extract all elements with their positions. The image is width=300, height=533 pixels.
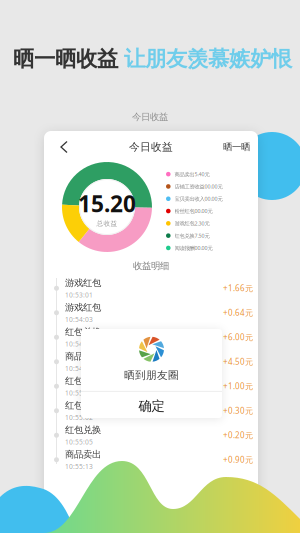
staticText: 商品卖出5.40元 bbox=[175, 171, 210, 178]
staticText: 红包兑换 bbox=[65, 326, 101, 338]
staticText: +6.00元 bbox=[223, 332, 253, 342]
staticText: 红包兑换 bbox=[65, 424, 101, 436]
staticText: 晒一晒 bbox=[223, 141, 250, 153]
staticText: 商品卖出 bbox=[65, 449, 101, 460]
staticText: 粉丝红包00.00元 bbox=[175, 207, 213, 215]
staticText: 红包兑换7.50元 bbox=[175, 232, 210, 239]
staticText: 店铺工资收益00.00元 bbox=[175, 183, 223, 190]
staticText: 红包兑换 bbox=[65, 400, 101, 411]
staticText: 今日收益 bbox=[129, 140, 173, 153]
staticText: 10:54:40 bbox=[65, 364, 93, 373]
staticText: 晒一晒收益 bbox=[13, 46, 118, 72]
staticText: +1.00元 bbox=[223, 381, 253, 391]
staticText: +1.66元 bbox=[223, 283, 253, 293]
staticText: 总收益 bbox=[96, 219, 117, 228]
staticText: 阅读报酬00.00元 bbox=[175, 244, 213, 251]
staticText: 10:54:03 bbox=[65, 315, 93, 324]
staticText: 游戏红包2.30元 bbox=[175, 220, 210, 227]
staticText: 10:55:01 bbox=[65, 389, 93, 397]
staticText: +4.50元 bbox=[223, 356, 253, 367]
staticText: 10:55:13 bbox=[65, 462, 93, 471]
staticText: 红包兑换 bbox=[65, 375, 101, 387]
staticText: 宝贝卖出收入00.00元 bbox=[175, 195, 223, 202]
staticText: 让朋友羡慕嫉妒恨 bbox=[118, 46, 292, 72]
staticText: +0.90元 bbox=[223, 454, 253, 465]
button[interactable]: Back bbox=[44, 134, 76, 159]
staticText: +0.64元 bbox=[223, 307, 253, 318]
button[interactable]: 确定 bbox=[81, 392, 222, 420]
staticText: 收益明细 bbox=[133, 260, 169, 272]
staticText: +0.30元 bbox=[223, 405, 253, 416]
staticText: 10:54:21 bbox=[65, 340, 93, 348]
staticText: 今日收益 bbox=[132, 111, 168, 123]
staticText: 晒到朋友圈 bbox=[124, 369, 179, 382]
staticText: 商品卖出 bbox=[65, 351, 101, 362]
staticText: +0.20元 bbox=[223, 430, 253, 440]
staticText: 15.20 bbox=[78, 188, 136, 218]
staticText: 10:53:01 bbox=[65, 291, 93, 299]
staticText: 游戏红包 bbox=[65, 302, 101, 313]
staticText: 10:55:02 bbox=[65, 413, 93, 422]
staticText: 游戏红包 bbox=[65, 277, 101, 289]
button[interactable]: 晒一晒 bbox=[215, 134, 258, 160]
staticText: 确定 bbox=[138, 398, 164, 414]
staticText: 10:55:05 bbox=[65, 438, 93, 446]
